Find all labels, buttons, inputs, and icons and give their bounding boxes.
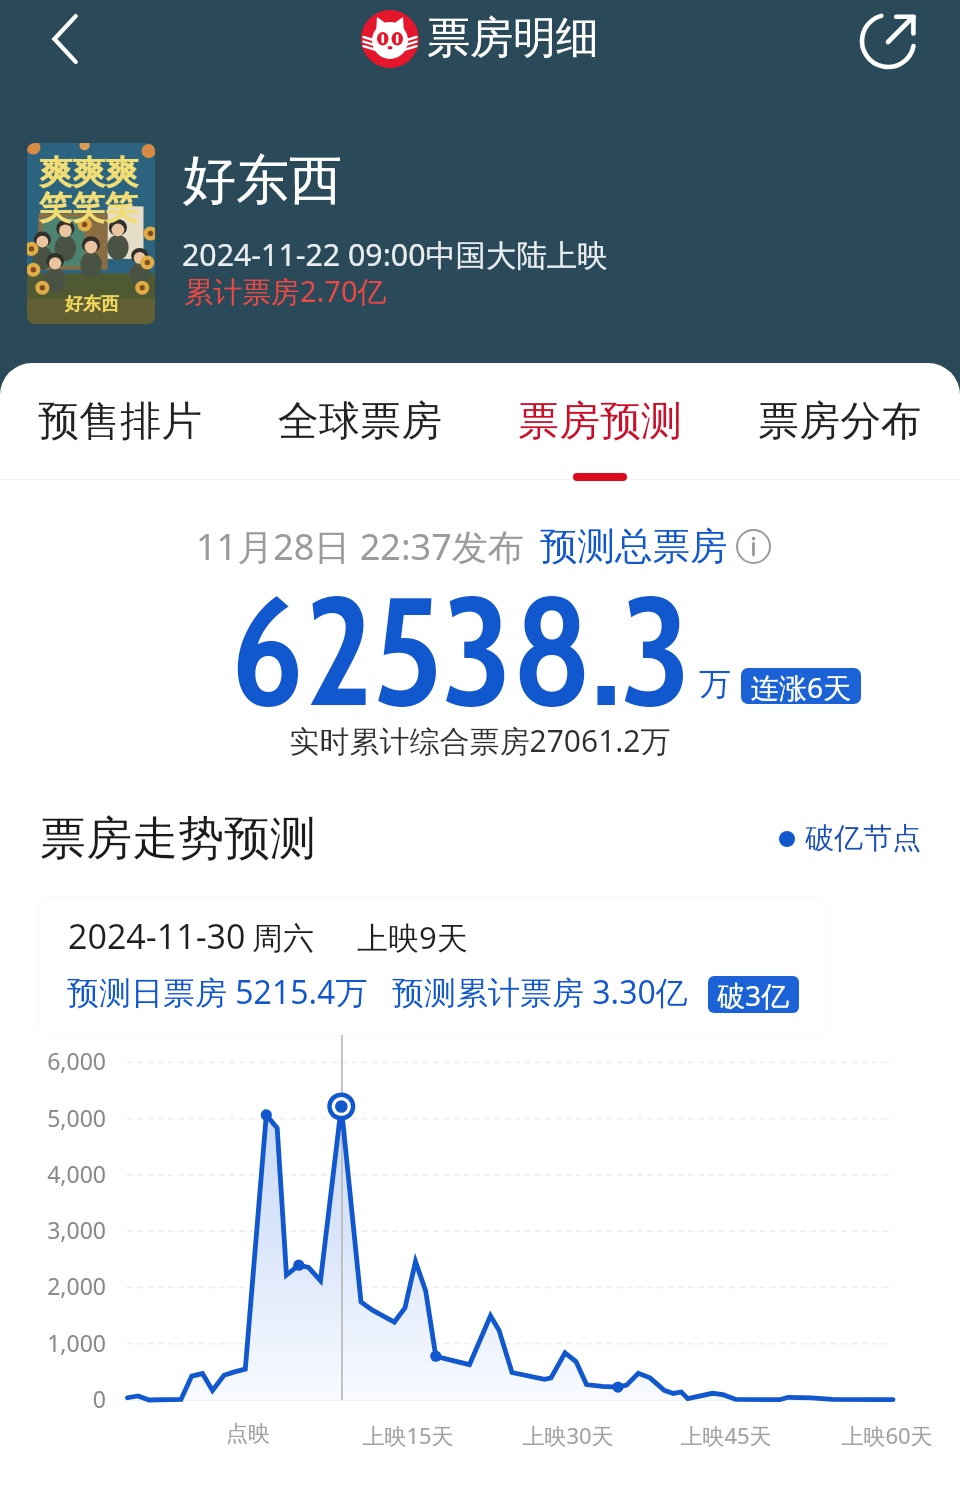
staticText: 票房明细 (427, 11, 599, 65)
button[interactable]: 票房预测 (480, 363, 720, 479)
button[interactable]: 预售排片 (0, 363, 240, 479)
button[interactable]: 票房明细 (361, 10, 599, 68)
staticText: 票房预测 (518, 396, 682, 448)
staticText: 上映60天 (807, 1420, 960, 1450)
staticText: 破亿节点 (805, 820, 921, 857)
button[interactable]: Share (856, 9, 920, 73)
staticText: 预测总票房 (540, 523, 728, 570)
button[interactable]: 票房分布 (720, 363, 960, 479)
staticText: 1,000 (0, 1327, 106, 1358)
staticText: 好东西 (183, 147, 342, 214)
staticText: 周六 (252, 919, 314, 958)
staticText: 上映15天 (328, 1420, 488, 1450)
button[interactable]: 2024-11-30 (40, 899, 825, 1034)
button[interactable]: 说明 (736, 529, 771, 564)
staticText: 好东西 (65, 293, 119, 316)
staticText: 6,000 (0, 1045, 106, 1076)
staticText: 上映45天 (646, 1420, 806, 1450)
button[interactable]: 破亿节点 (779, 820, 921, 857)
staticText: 3,000 (0, 1214, 106, 1245)
button[interactable]: Back (22, 1, 84, 79)
staticText: 预测累计票房 3.30亿 (392, 970, 688, 1014)
staticText: 0 (0, 1383, 106, 1414)
staticText: 破3亿 (717, 976, 790, 1013)
button[interactable]: 全球票房 (240, 363, 480, 479)
staticText: 实时累计综合票房27061.2万 (0, 720, 960, 761)
staticText: 预售排片 (38, 396, 202, 448)
staticText: 全球票房 (278, 396, 442, 448)
staticText: 票房分布 (758, 396, 922, 448)
staticText: 累计票房2.70亿 (184, 271, 387, 311)
staticText: 万 (699, 664, 731, 704)
staticText: 预测日票房 5215.4万 (67, 970, 368, 1014)
staticText: 点映 (168, 1420, 328, 1448)
staticText: 票房走势预测 (40, 810, 316, 868)
staticText: 笑笑笑 (39, 187, 138, 229)
staticText: 11月28日 22:37发布 (196, 522, 524, 571)
staticText: 2024-11-30 (68, 913, 246, 959)
staticText: 4,000 (0, 1158, 106, 1189)
staticText: 62538.3 (231, 557, 691, 743)
staticText: 爽爽爽 (39, 152, 138, 194)
staticText: 2,000 (0, 1270, 106, 1301)
staticText: 连涨6天 (751, 668, 852, 704)
button[interactable]: 连涨6天 (741, 668, 861, 704)
staticText: 5,000 (0, 1102, 106, 1133)
staticText: 2024-11-22 09:00中国大陆上映 (182, 234, 608, 275)
staticText: 上映9天 (357, 916, 468, 958)
staticText: 上映30天 (488, 1420, 648, 1450)
